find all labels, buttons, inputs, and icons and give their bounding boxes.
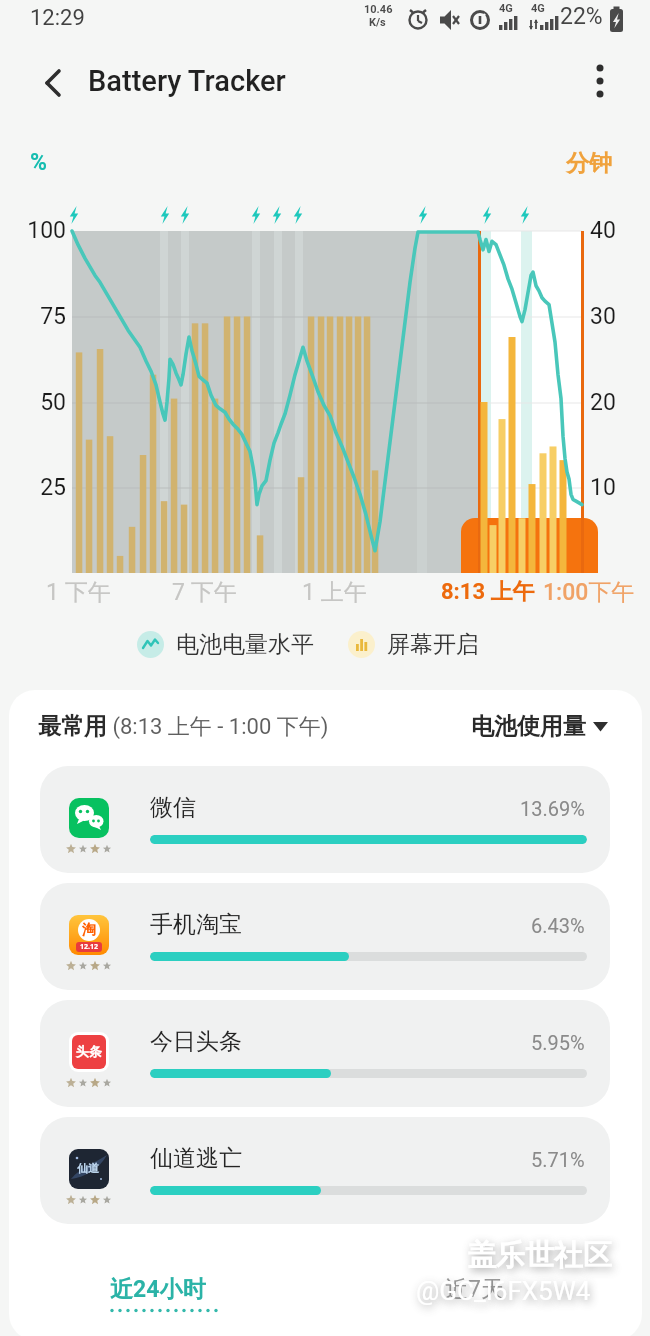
button[interactable]: 近7天 <box>434 1268 554 1318</box>
staticText: 近7天 <box>445 1275 504 1304</box>
button[interactable] <box>34 64 74 104</box>
staticText: 4G <box>499 2 513 15</box>
staticText: 6.43% <box>531 914 585 937</box>
staticText: @GC_I6FX5W4 <box>416 1276 591 1306</box>
button[interactable]: 头条 <box>40 1000 610 1107</box>
button[interactable]: 仙道 <box>40 1117 610 1224</box>
staticText: 50 <box>6 389 66 416</box>
staticText: 盖乐世社区 <box>467 1237 612 1274</box>
staticText: (8:13 上午 - 1:00 下午) <box>107 713 329 741</box>
staticText: 分钟 <box>566 149 612 178</box>
staticText: 8:13 上午 <box>441 578 535 606</box>
staticText: 5.71% <box>531 1148 585 1171</box>
staticText: 25 <box>6 474 66 501</box>
staticText: 20 <box>590 389 616 416</box>
staticText: 7 下午 <box>172 578 237 607</box>
staticText: 头条 <box>76 1043 102 1059</box>
staticText: 13.69% <box>520 797 585 820</box>
staticText: 75 <box>6 303 66 330</box>
staticText: 30 <box>590 303 616 330</box>
staticText: 12.12 <box>80 942 98 952</box>
staticText: 近24小时 <box>110 1275 206 1304</box>
staticText: Battery Tracker <box>88 64 286 98</box>
button[interactable]: 淘 <box>40 883 610 990</box>
staticText: 微信 <box>150 793 196 822</box>
staticText: 电池电量水平 <box>176 630 314 659</box>
staticText: 1 上午 <box>302 578 367 607</box>
staticText: 5.95% <box>531 1031 585 1054</box>
staticText: 10 <box>590 474 616 501</box>
button[interactable]: 近24小时 <box>99 1268 234 1318</box>
staticText: 最常用 <box>38 712 107 741</box>
staticText: 仙道逃亡 <box>150 1144 242 1173</box>
staticText: 12:29 <box>30 5 85 31</box>
staticText: 手机淘宝 <box>150 910 242 939</box>
button[interactable]: 微信 <box>40 766 610 873</box>
staticText: 1 下午 <box>46 578 111 607</box>
staticText: 10.46 <box>364 3 393 16</box>
staticText: 淘 <box>82 921 96 939</box>
staticText: 4G <box>531 2 545 15</box>
staticText: % <box>30 149 47 176</box>
staticText: 100 <box>6 217 66 244</box>
button[interactable] <box>582 60 620 104</box>
staticText: 22% <box>560 3 603 30</box>
staticText: 电池使用量 <box>471 712 586 741</box>
staticText: 仙道 <box>77 1161 99 1175</box>
staticText: 1:00下午 <box>543 578 635 607</box>
staticText: 40 <box>590 217 616 244</box>
staticText: 今日头条 <box>150 1027 242 1056</box>
button[interactable]: 电池使用量 <box>471 712 608 741</box>
staticText: 屏幕开启 <box>387 630 479 659</box>
staticText: K/s <box>369 16 386 29</box>
